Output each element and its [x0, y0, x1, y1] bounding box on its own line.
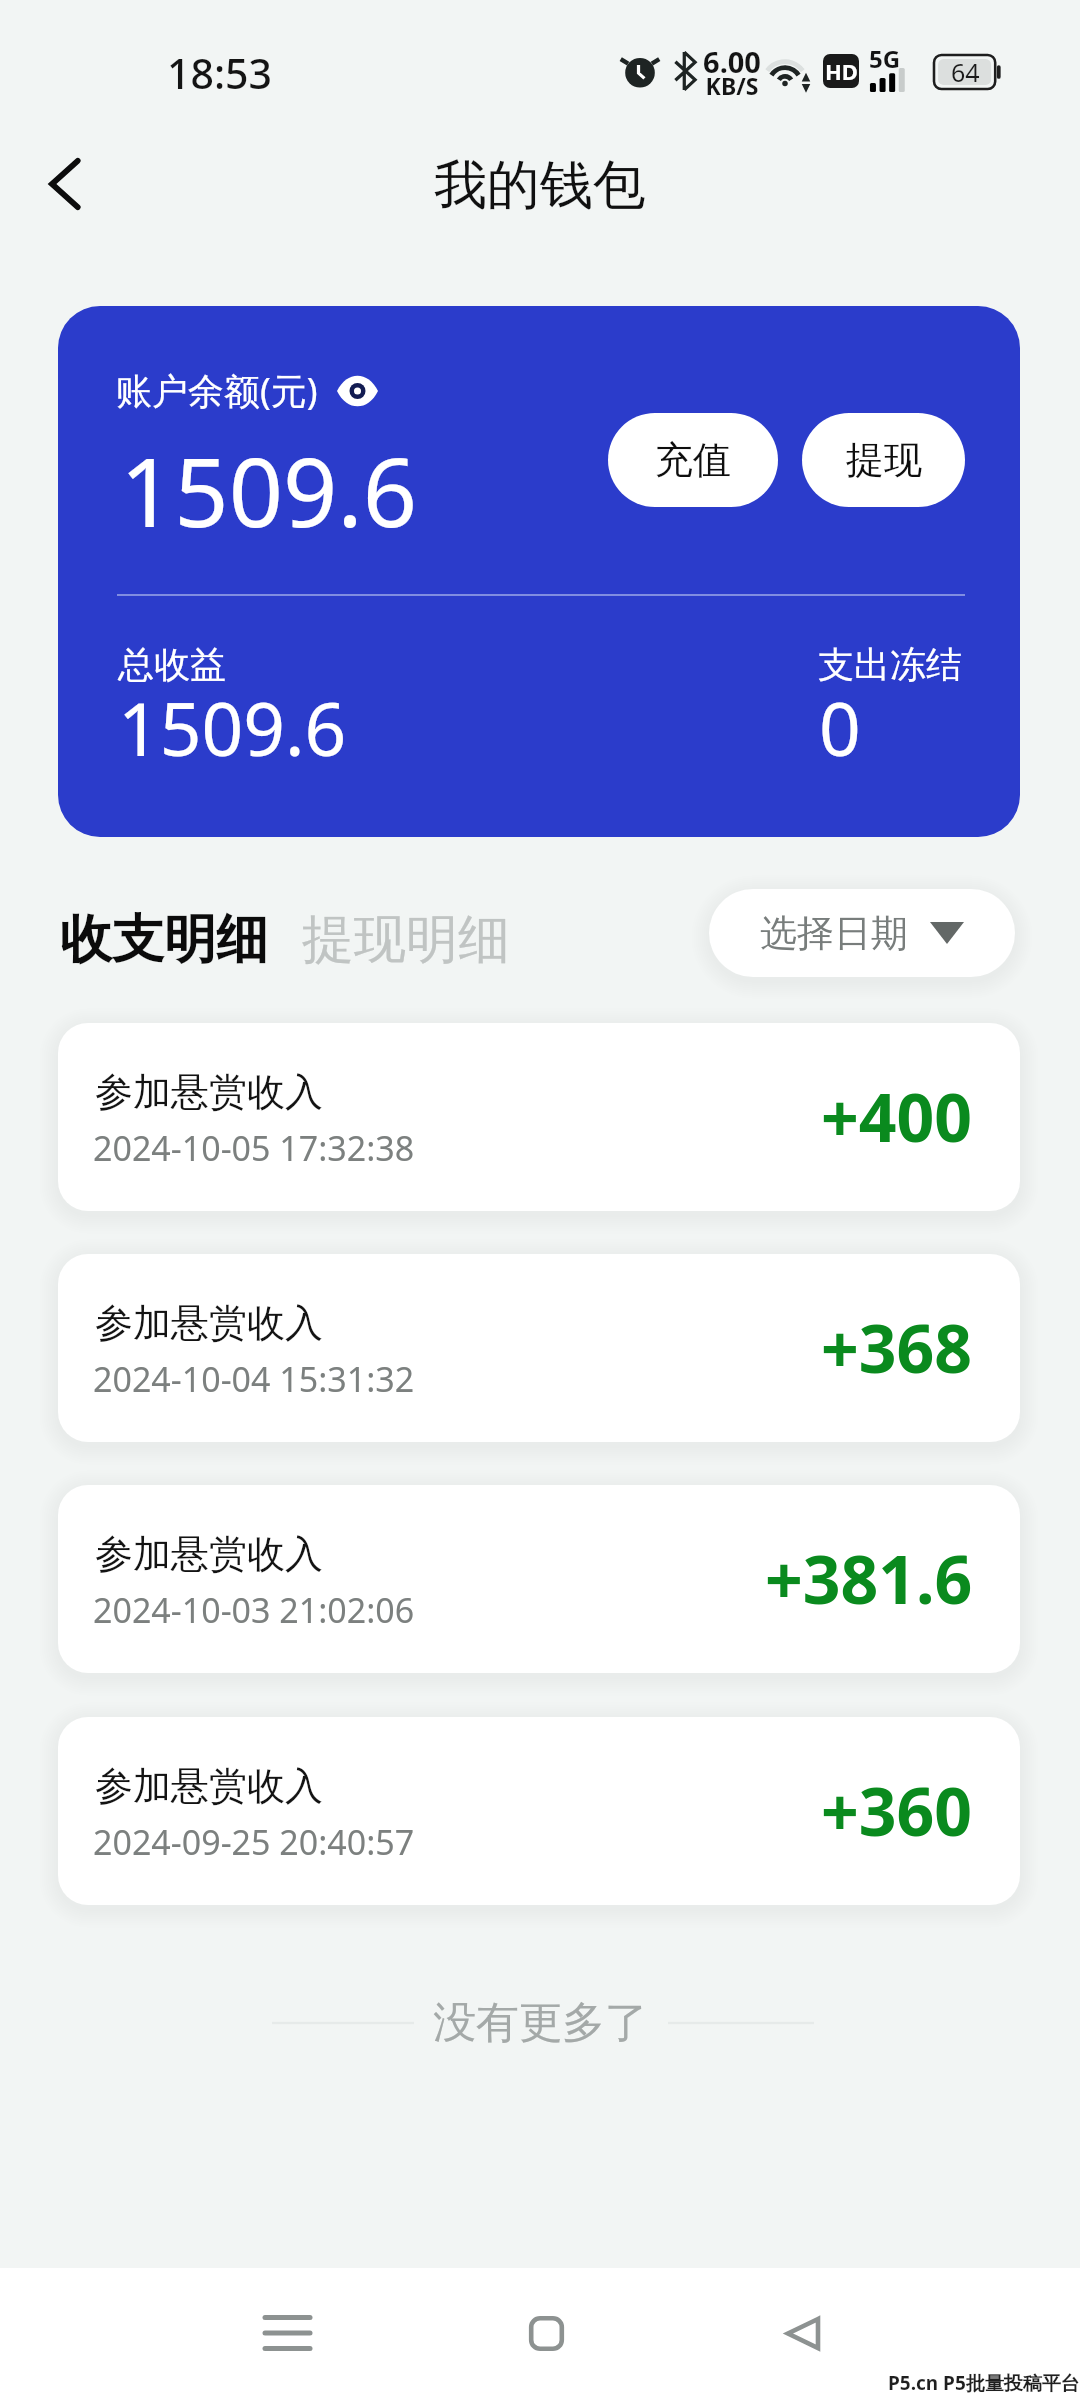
button[interactable]: 选择日期 [709, 889, 1015, 977]
button[interactable]: 参加悬赏收入 [58, 1254, 1020, 1442]
staticText: +381.6 [765, 1533, 973, 1623]
button[interactable]: 参加悬赏收入 [58, 1717, 1020, 1905]
staticText: 我的钱包 [434, 152, 646, 219]
staticText: +360 [821, 1765, 973, 1855]
button[interactable]: 参加悬赏收入 [58, 1023, 1020, 1211]
staticText: 账户余额(元) [116, 366, 318, 415]
staticText: +368 [821, 1302, 973, 1392]
staticText: KB/S [702, 70, 762, 101]
staticText: P5.cn P5批量投稿平台 [888, 2370, 1080, 2396]
staticText: 选择日期 [760, 910, 908, 957]
staticText: 2024-10-04 15:31:32 [93, 1356, 415, 1402]
button[interactable]: Back [18, 138, 110, 230]
button[interactable]: Recent apps [247, 2293, 327, 2373]
staticText: 2024-09-25 20:40:57 [93, 1819, 415, 1865]
staticText: 支出冻结 [818, 642, 962, 687]
button[interactable]: 参加悬赏收入 [58, 1485, 1020, 1673]
staticText: 参加悬赏收入 [95, 1068, 323, 1116]
button[interactable]: 提现明细 [288, 893, 524, 987]
staticText: 0 [819, 678, 861, 777]
staticText: 参加悬赏收入 [95, 1530, 323, 1578]
button[interactable]: 账户余额(元) [58, 306, 1020, 837]
button[interactable]: 收支明细 [46, 893, 282, 987]
button[interactable]: 充值 [608, 413, 778, 507]
staticText: 18:53 [167, 45, 272, 101]
staticText: HD [825, 56, 858, 86]
staticText: 充值 [655, 436, 731, 484]
staticText: 总收益 [118, 642, 226, 687]
staticText: 参加悬赏收入 [95, 1299, 323, 1347]
staticText: 2024-10-03 21:02:06 [93, 1587, 415, 1633]
button[interactable]: Back [763, 2293, 843, 2373]
staticText: 1509.6 [118, 678, 347, 777]
staticText: 没有更多了 [433, 1996, 648, 2050]
staticText: 1509.6 [120, 425, 418, 554]
staticText: 5G [869, 42, 901, 75]
button[interactable]: Home [506, 2293, 586, 2373]
staticText: 收支明细 [60, 907, 268, 973]
button[interactable]: 提现 [802, 413, 965, 507]
staticText: +400 [821, 1071, 973, 1161]
staticText: 提现明细 [302, 907, 510, 973]
staticText: 6.00 [702, 42, 762, 81]
staticText: 64 [951, 55, 980, 89]
staticText: 2024-10-05 17:32:38 [93, 1125, 415, 1171]
staticText: 提现 [846, 436, 922, 484]
staticText: 参加悬赏收入 [95, 1762, 323, 1810]
